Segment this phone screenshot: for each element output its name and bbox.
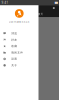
staticText: 9:41: [2, 1, 9, 4]
staticText: ▮▮▮: [54, 1, 57, 4]
button[interactable]: 好友: [0, 36, 38, 43]
button[interactable]: 聊天: [37, 12, 45, 16]
button[interactable]: 关于: [0, 62, 38, 68]
button[interactable]: 消息: [0, 30, 38, 36]
staticText: 聊天: [38, 12, 44, 16]
staticText: 关于: [11, 64, 17, 67]
staticText: 好友: [11, 38, 17, 41]
staticText: 我的文件: [11, 51, 23, 54]
staticText: 设置: [11, 57, 17, 61]
staticText: 收藏: [11, 44, 17, 48]
button[interactable]: 收藏: [0, 43, 38, 49]
staticText: 消息: [11, 32, 17, 35]
button[interactable]: Account: [51, 6, 56, 10]
button[interactable]: 设置: [0, 56, 38, 62]
staticText: username8848: [9, 20, 30, 24]
button[interactable]: 我的文件: [0, 49, 38, 56]
